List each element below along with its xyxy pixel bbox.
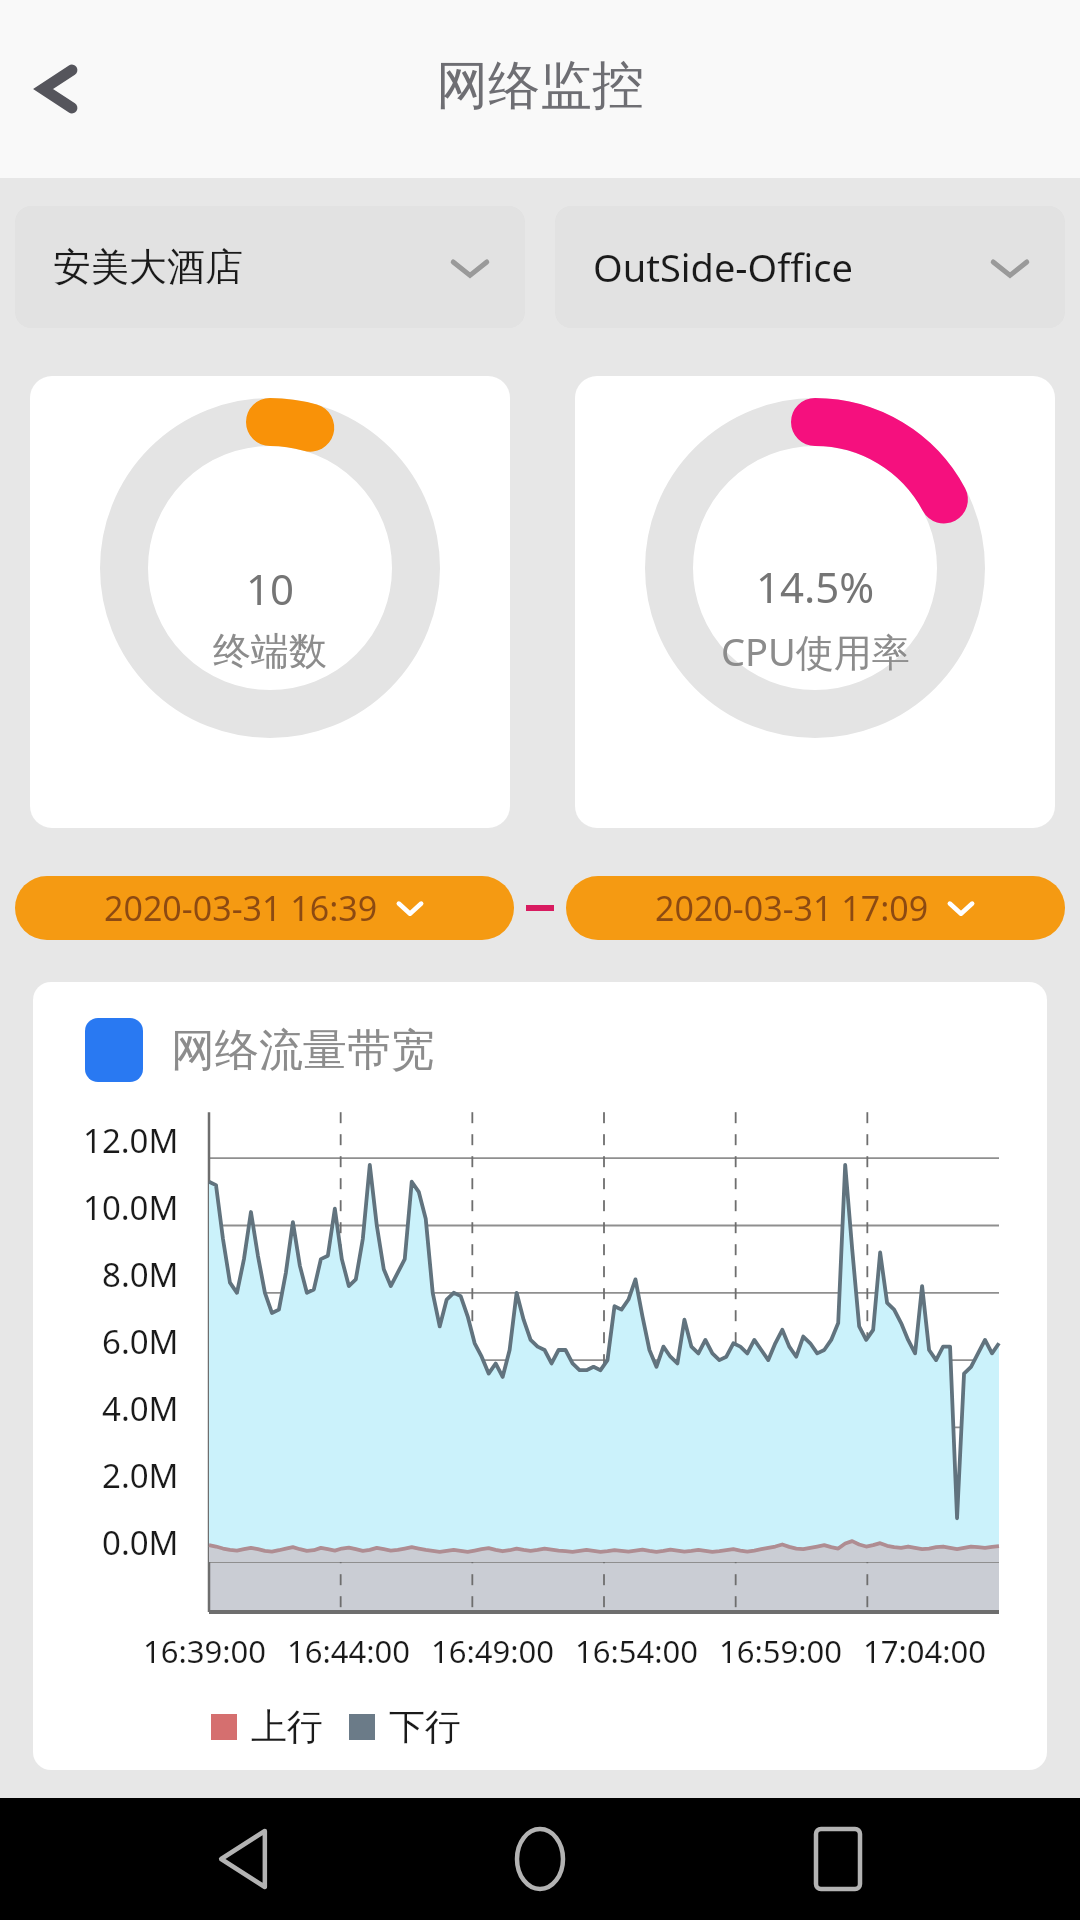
staticText: 6.0M <box>102 1319 179 1364</box>
staticText: 4.0M <box>102 1386 179 1431</box>
staticText: 网络监控 <box>436 53 644 119</box>
staticText: CPU使用率 <box>721 625 910 677</box>
staticText: 14.5% <box>756 558 875 615</box>
staticText: 16:49:00 <box>431 1630 575 1672</box>
button[interactable]: OutSide-Office <box>555 206 1065 328</box>
staticText: 上行 <box>251 1704 323 1749</box>
staticText: 终端数 <box>213 627 327 675</box>
staticText: 2020-03-31 16:39 <box>104 885 378 931</box>
staticText: 12.0M <box>83 1118 179 1163</box>
button[interactable]: Back <box>8 44 98 134</box>
button[interactable]: Recent apps <box>783 1804 893 1914</box>
button[interactable]: 10 <box>30 376 510 828</box>
staticText: 下行 <box>389 1704 461 1749</box>
button[interactable]: Home <box>485 1804 595 1914</box>
staticText: 网络流量带宽 <box>171 1023 435 1078</box>
staticText: 16:39:00 <box>143 1630 287 1672</box>
staticText: 16:44:00 <box>287 1630 431 1672</box>
staticText: 0.0M <box>102 1520 179 1565</box>
staticText: 10 <box>246 560 295 617</box>
staticText: 2.0M <box>102 1453 179 1498</box>
staticText: 16:59:00 <box>719 1630 863 1672</box>
staticText: 17:04:00 <box>863 1630 1007 1672</box>
staticText: 8.0M <box>102 1252 179 1297</box>
staticText: OutSide-Office <box>593 241 853 293</box>
button[interactable]: 2020-03-31 17:09 <box>566 876 1065 940</box>
button[interactable]: Back <box>188 1804 298 1914</box>
button[interactable]: 安美大酒店 <box>15 206 525 328</box>
staticText: 10.0M <box>83 1185 179 1230</box>
staticText: 16:54:00 <box>575 1630 719 1672</box>
staticText: 安美大酒店 <box>53 243 243 291</box>
staticText: 2020-03-31 17:09 <box>655 885 929 931</box>
button[interactable]: 2020-03-31 16:39 <box>15 876 514 940</box>
button[interactable]: 14.5% <box>575 376 1055 828</box>
